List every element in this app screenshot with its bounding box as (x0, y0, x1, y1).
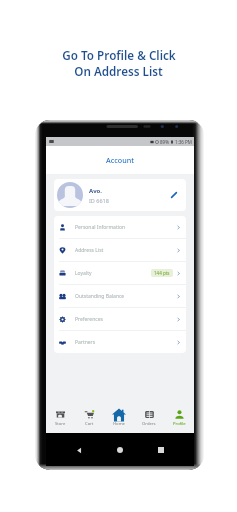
button[interactable]: Edit profile (167, 188, 181, 202)
staticText: Account (106, 155, 134, 165)
button[interactable]: Back (71, 442, 87, 458)
button[interactable]: Preferences (54, 308, 186, 330)
staticText: ID 6618 (89, 197, 109, 204)
button[interactable]: Outstanding Balance (54, 285, 186, 307)
staticText: Go To Profile & Click (62, 47, 176, 63)
staticText: Preferences (75, 316, 103, 323)
button[interactable]: Recents (153, 442, 169, 458)
button[interactable]: Home (112, 442, 128, 458)
button[interactable]: Profile (164, 407, 194, 433)
button[interactable]: Store (46, 407, 75, 433)
staticText: Address List (75, 247, 104, 254)
staticText: Personal Information (75, 224, 126, 231)
staticText: On Address List (74, 63, 163, 79)
staticText: Cart (85, 421, 94, 427)
staticText: 144 pts (154, 270, 170, 276)
button[interactable]: Address List (54, 239, 186, 261)
button[interactable]: Orders (134, 407, 164, 433)
staticText: Store (55, 421, 66, 427)
staticText: Home (113, 421, 125, 427)
button[interactable]: Home (104, 407, 134, 433)
staticText: Profile (173, 421, 186, 427)
button[interactable]: Personal Information (54, 216, 186, 238)
staticText: Outstanding Balance (75, 293, 125, 300)
staticText: Loyalty (75, 270, 92, 277)
staticText: 89% (160, 139, 169, 145)
staticText: 1:36 PM (175, 139, 192, 145)
button[interactable]: Partners (54, 331, 186, 353)
button[interactable]: Cart (75, 407, 104, 433)
staticText: Partners (75, 339, 96, 346)
button[interactable]: Loyalty (54, 262, 186, 284)
staticText: Orders (142, 421, 156, 427)
button[interactable]: Avo. (54, 179, 186, 211)
staticText: Avo. (89, 187, 103, 195)
